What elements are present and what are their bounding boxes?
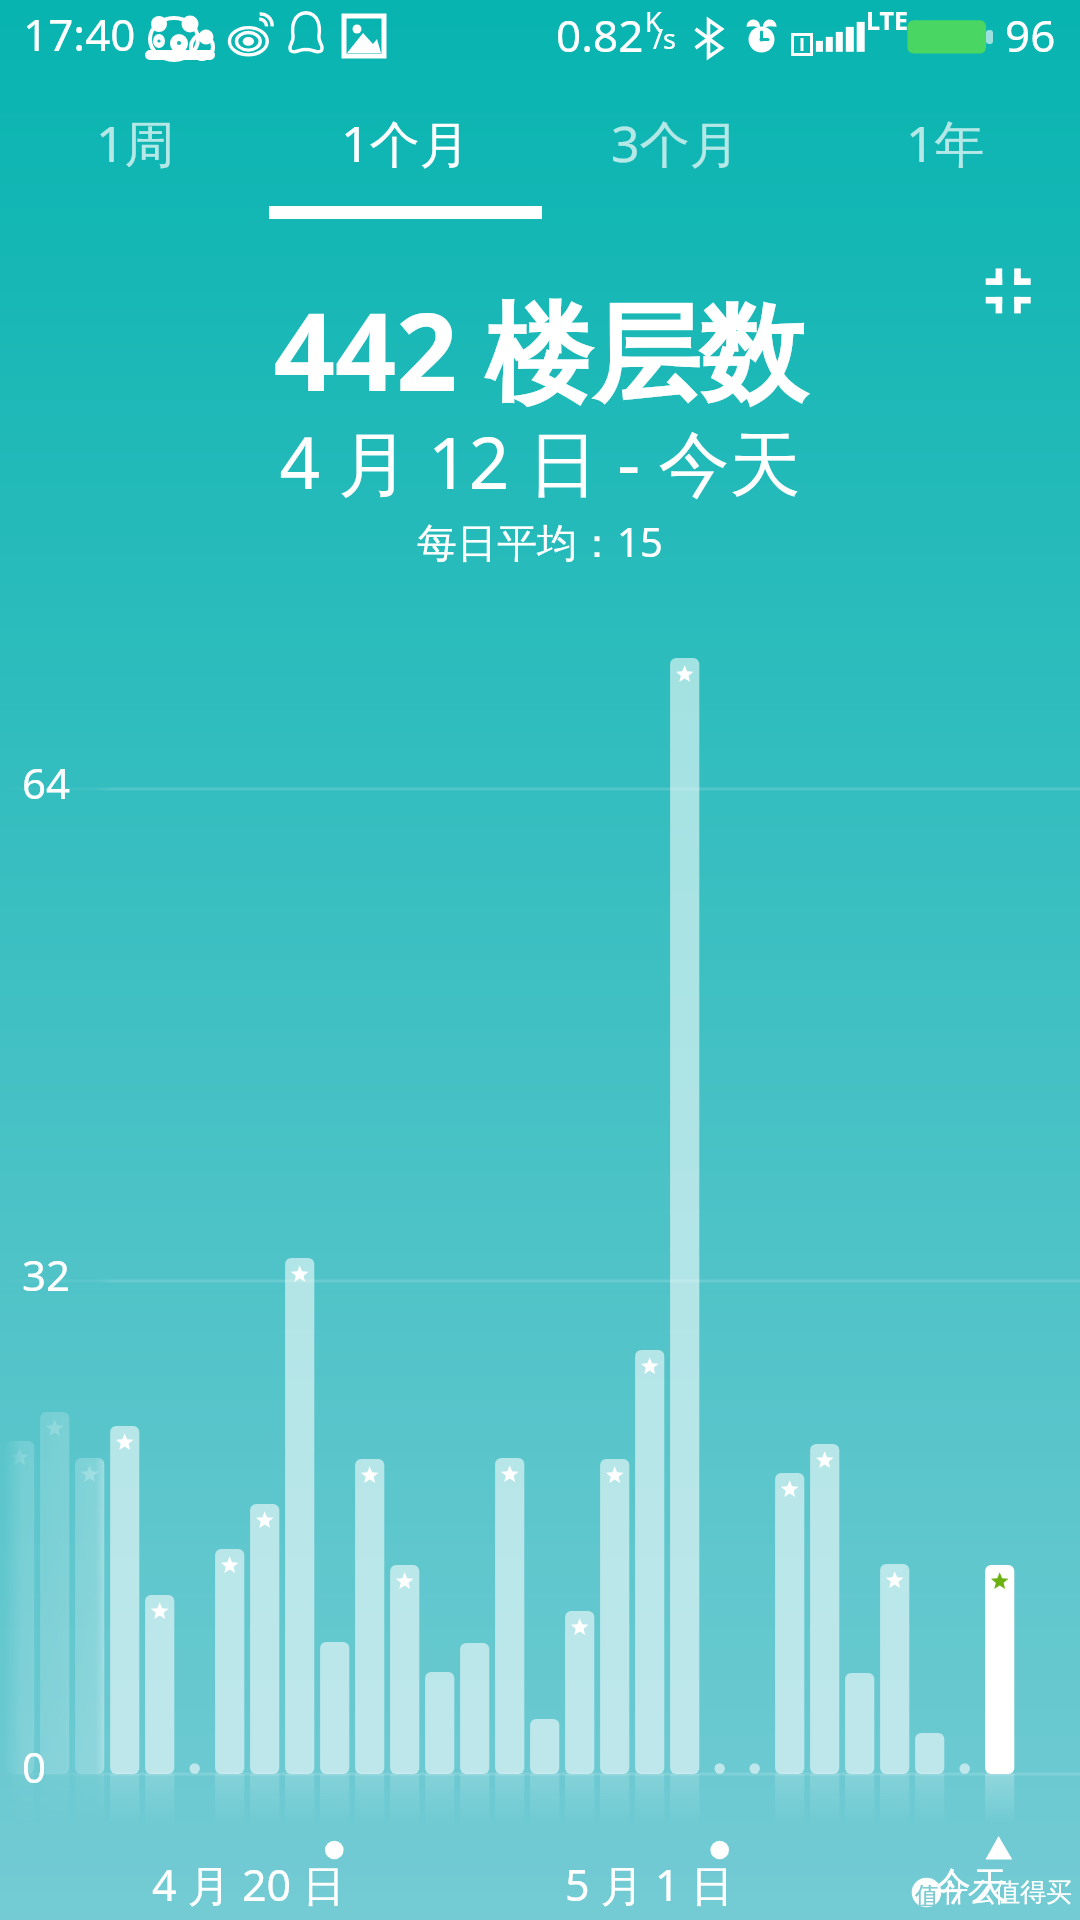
staticText: LTE <box>866 3 908 37</box>
staticText: 0 <box>22 1738 47 1795</box>
staticText: 17:40 <box>23 4 136 64</box>
staticText: /s <box>653 20 676 57</box>
staticText: 96 <box>1005 5 1056 65</box>
staticText: 4 月 20 日 <box>152 1855 346 1914</box>
staticText: 什么值得买 <box>942 1876 1072 1909</box>
staticText: 1周 <box>96 109 175 173</box>
button[interactable]: 1个月 <box>270 109 540 173</box>
staticText: 442 楼层数 <box>0 277 1080 423</box>
staticText: 64 <box>22 754 71 811</box>
staticText: 0.82 <box>556 5 644 65</box>
button[interactable]: 1年 <box>810 109 1080 173</box>
button[interactable]: 1周 <box>0 109 270 173</box>
staticText: 值 <box>915 1881 939 1911</box>
staticText: 32 <box>22 1246 71 1303</box>
staticText: 5 月 1 日 <box>565 1855 734 1914</box>
button[interactable]: 3个月 <box>540 109 810 173</box>
staticText: 每日平均：15 <box>0 514 1080 569</box>
button[interactable]: Collapse <box>962 245 1054 337</box>
staticText: 1个月 <box>341 109 470 173</box>
staticText: 3个月 <box>611 109 740 173</box>
staticText: 1年 <box>906 109 985 173</box>
staticText: 今天 <box>933 1862 1009 1910</box>
staticText: 4 月 12 日 - 今天 <box>0 413 1080 510</box>
staticText: K <box>645 3 662 40</box>
